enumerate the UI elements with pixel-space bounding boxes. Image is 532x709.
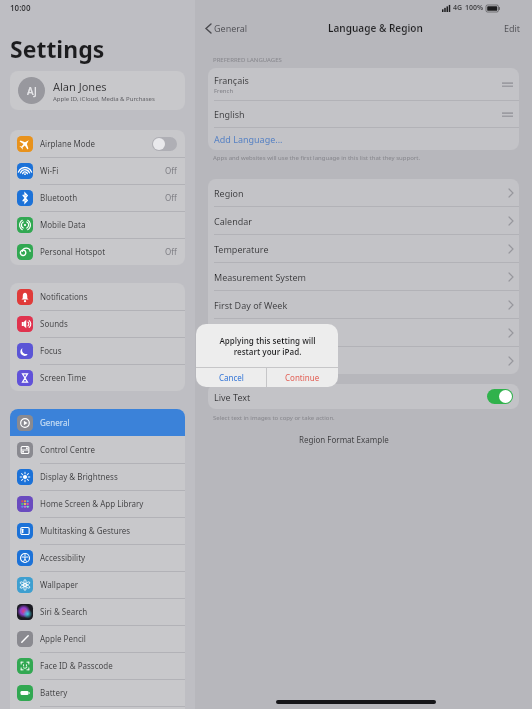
button[interactable]: Airplane Mode — [10, 130, 185, 157]
staticText: Region — [214, 187, 244, 199]
button[interactable]: Wallpaper — [10, 571, 185, 598]
staticText: Wallpaper — [40, 579, 79, 590]
staticText: Apple Pencil — [40, 633, 86, 644]
button[interactable]: English — [208, 101, 519, 127]
button[interactable]: Screen Time — [10, 364, 185, 391]
button[interactable]: Time Format — [208, 347, 519, 374]
button[interactable]: Focus — [10, 337, 185, 364]
button[interactable]: Temperature — [208, 235, 519, 262]
button[interactable]: Measurement System — [208, 263, 519, 290]
button[interactable]: Continue — [267, 368, 338, 387]
staticText: Mobile Data — [40, 219, 86, 230]
button[interactable]: Personal Hotspot — [10, 238, 185, 265]
staticText: Date Format — [214, 327, 267, 339]
staticText: Screen Time — [40, 372, 86, 383]
staticText: Apple ID, iCloud, Media & Purchases — [53, 95, 155, 103]
staticText: Sounds — [40, 318, 68, 329]
button[interactable]: Notifications — [10, 283, 185, 310]
button[interactable]: Wi-Fi — [10, 157, 185, 184]
staticText: Alan Jones — [53, 79, 107, 94]
button[interactable]: Face ID & Passcode — [10, 652, 185, 679]
staticText: Add Language... — [214, 133, 283, 145]
staticText: Face ID & Passcode — [40, 660, 113, 671]
staticText: Control Centre — [40, 444, 95, 455]
staticText: Calendar — [214, 215, 252, 227]
staticText: Home Screen & App Library — [40, 498, 144, 509]
button[interactable]: Control Centre — [10, 436, 185, 463]
button[interactable]: Battery — [10, 679, 185, 706]
button[interactable]: Multitasking & Gestures — [10, 517, 185, 544]
button[interactable]: Home Screen & App Library — [10, 490, 185, 517]
staticText: 10:00 — [10, 2, 31, 13]
staticText: Settings — [10, 33, 105, 64]
staticText: 100% — [465, 3, 484, 13]
staticText: English — [214, 108, 245, 120]
button[interactable]: Privacy & Security — [10, 706, 185, 709]
button[interactable]: Date Format — [208, 319, 519, 346]
staticText: Off — [165, 246, 177, 257]
staticText: Battery — [40, 687, 68, 698]
staticText: Cancel — [219, 372, 244, 383]
button[interactable]: Display & Brightness — [10, 463, 185, 490]
staticText: Measurement System — [214, 271, 306, 283]
button[interactable]: Calendar — [208, 207, 519, 234]
staticText: Wi-Fi — [40, 165, 59, 176]
staticText: 4G — [453, 3, 463, 13]
staticText: Bluetooth — [40, 192, 78, 203]
button[interactable]: Add Language... — [208, 128, 519, 150]
staticText: Français — [214, 74, 249, 86]
staticText: French — [214, 87, 234, 95]
staticText: Language & Region — [328, 21, 423, 35]
staticText: Live Text — [214, 391, 251, 403]
button[interactable]: Sounds — [10, 310, 185, 337]
staticText: Airplane Mode — [40, 138, 96, 149]
staticText: Siri & Search — [40, 606, 88, 617]
staticText: Region Format Example — [299, 434, 389, 445]
staticText: Focus — [40, 345, 62, 356]
button[interactable]: Apple Pencil — [10, 625, 185, 652]
button[interactable]: Français — [208, 68, 519, 100]
staticText: General — [40, 417, 70, 428]
staticText: Off — [165, 192, 177, 203]
button[interactable]: First Day of Week — [208, 291, 519, 318]
staticText: Display & Brightness — [40, 471, 118, 482]
staticText: Off — [165, 165, 177, 176]
staticText: Time Format — [214, 355, 268, 367]
staticText: Notifications — [40, 291, 88, 302]
staticText: General — [214, 22, 248, 34]
staticText: Select text in images to copy or take ac… — [213, 414, 335, 422]
staticText: Temperature — [214, 243, 269, 255]
button[interactable]: General — [10, 409, 185, 436]
button[interactable]: Siri & Search — [10, 598, 185, 625]
staticText: Edit — [504, 22, 521, 34]
staticText: Apps and websites will use the first lan… — [213, 154, 421, 162]
button[interactable]: Live Text — [208, 384, 519, 409]
staticText: Multitasking & Gestures — [40, 525, 131, 536]
staticText: Continue — [285, 372, 320, 383]
button[interactable]: Edit — [502, 20, 523, 36]
button[interactable]: Mobile Data — [10, 211, 185, 238]
button[interactable]: Accessibility — [10, 544, 185, 571]
staticText: Applying this setting will restart your … — [219, 335, 316, 357]
button[interactable]: Region — [208, 179, 519, 206]
staticText: Accessibility — [40, 552, 86, 563]
staticText: PREFERRED LANGUAGES — [213, 56, 282, 64]
button[interactable]: Bluetooth — [10, 184, 185, 211]
button[interactable]: Cancel — [196, 368, 266, 387]
button[interactable]: AJ — [10, 71, 185, 110]
button[interactable]: General — [204, 20, 250, 36]
staticText: Personal Hotspot — [40, 246, 106, 257]
staticText: First Day of Week — [214, 299, 288, 311]
staticText: AJ — [27, 84, 37, 98]
